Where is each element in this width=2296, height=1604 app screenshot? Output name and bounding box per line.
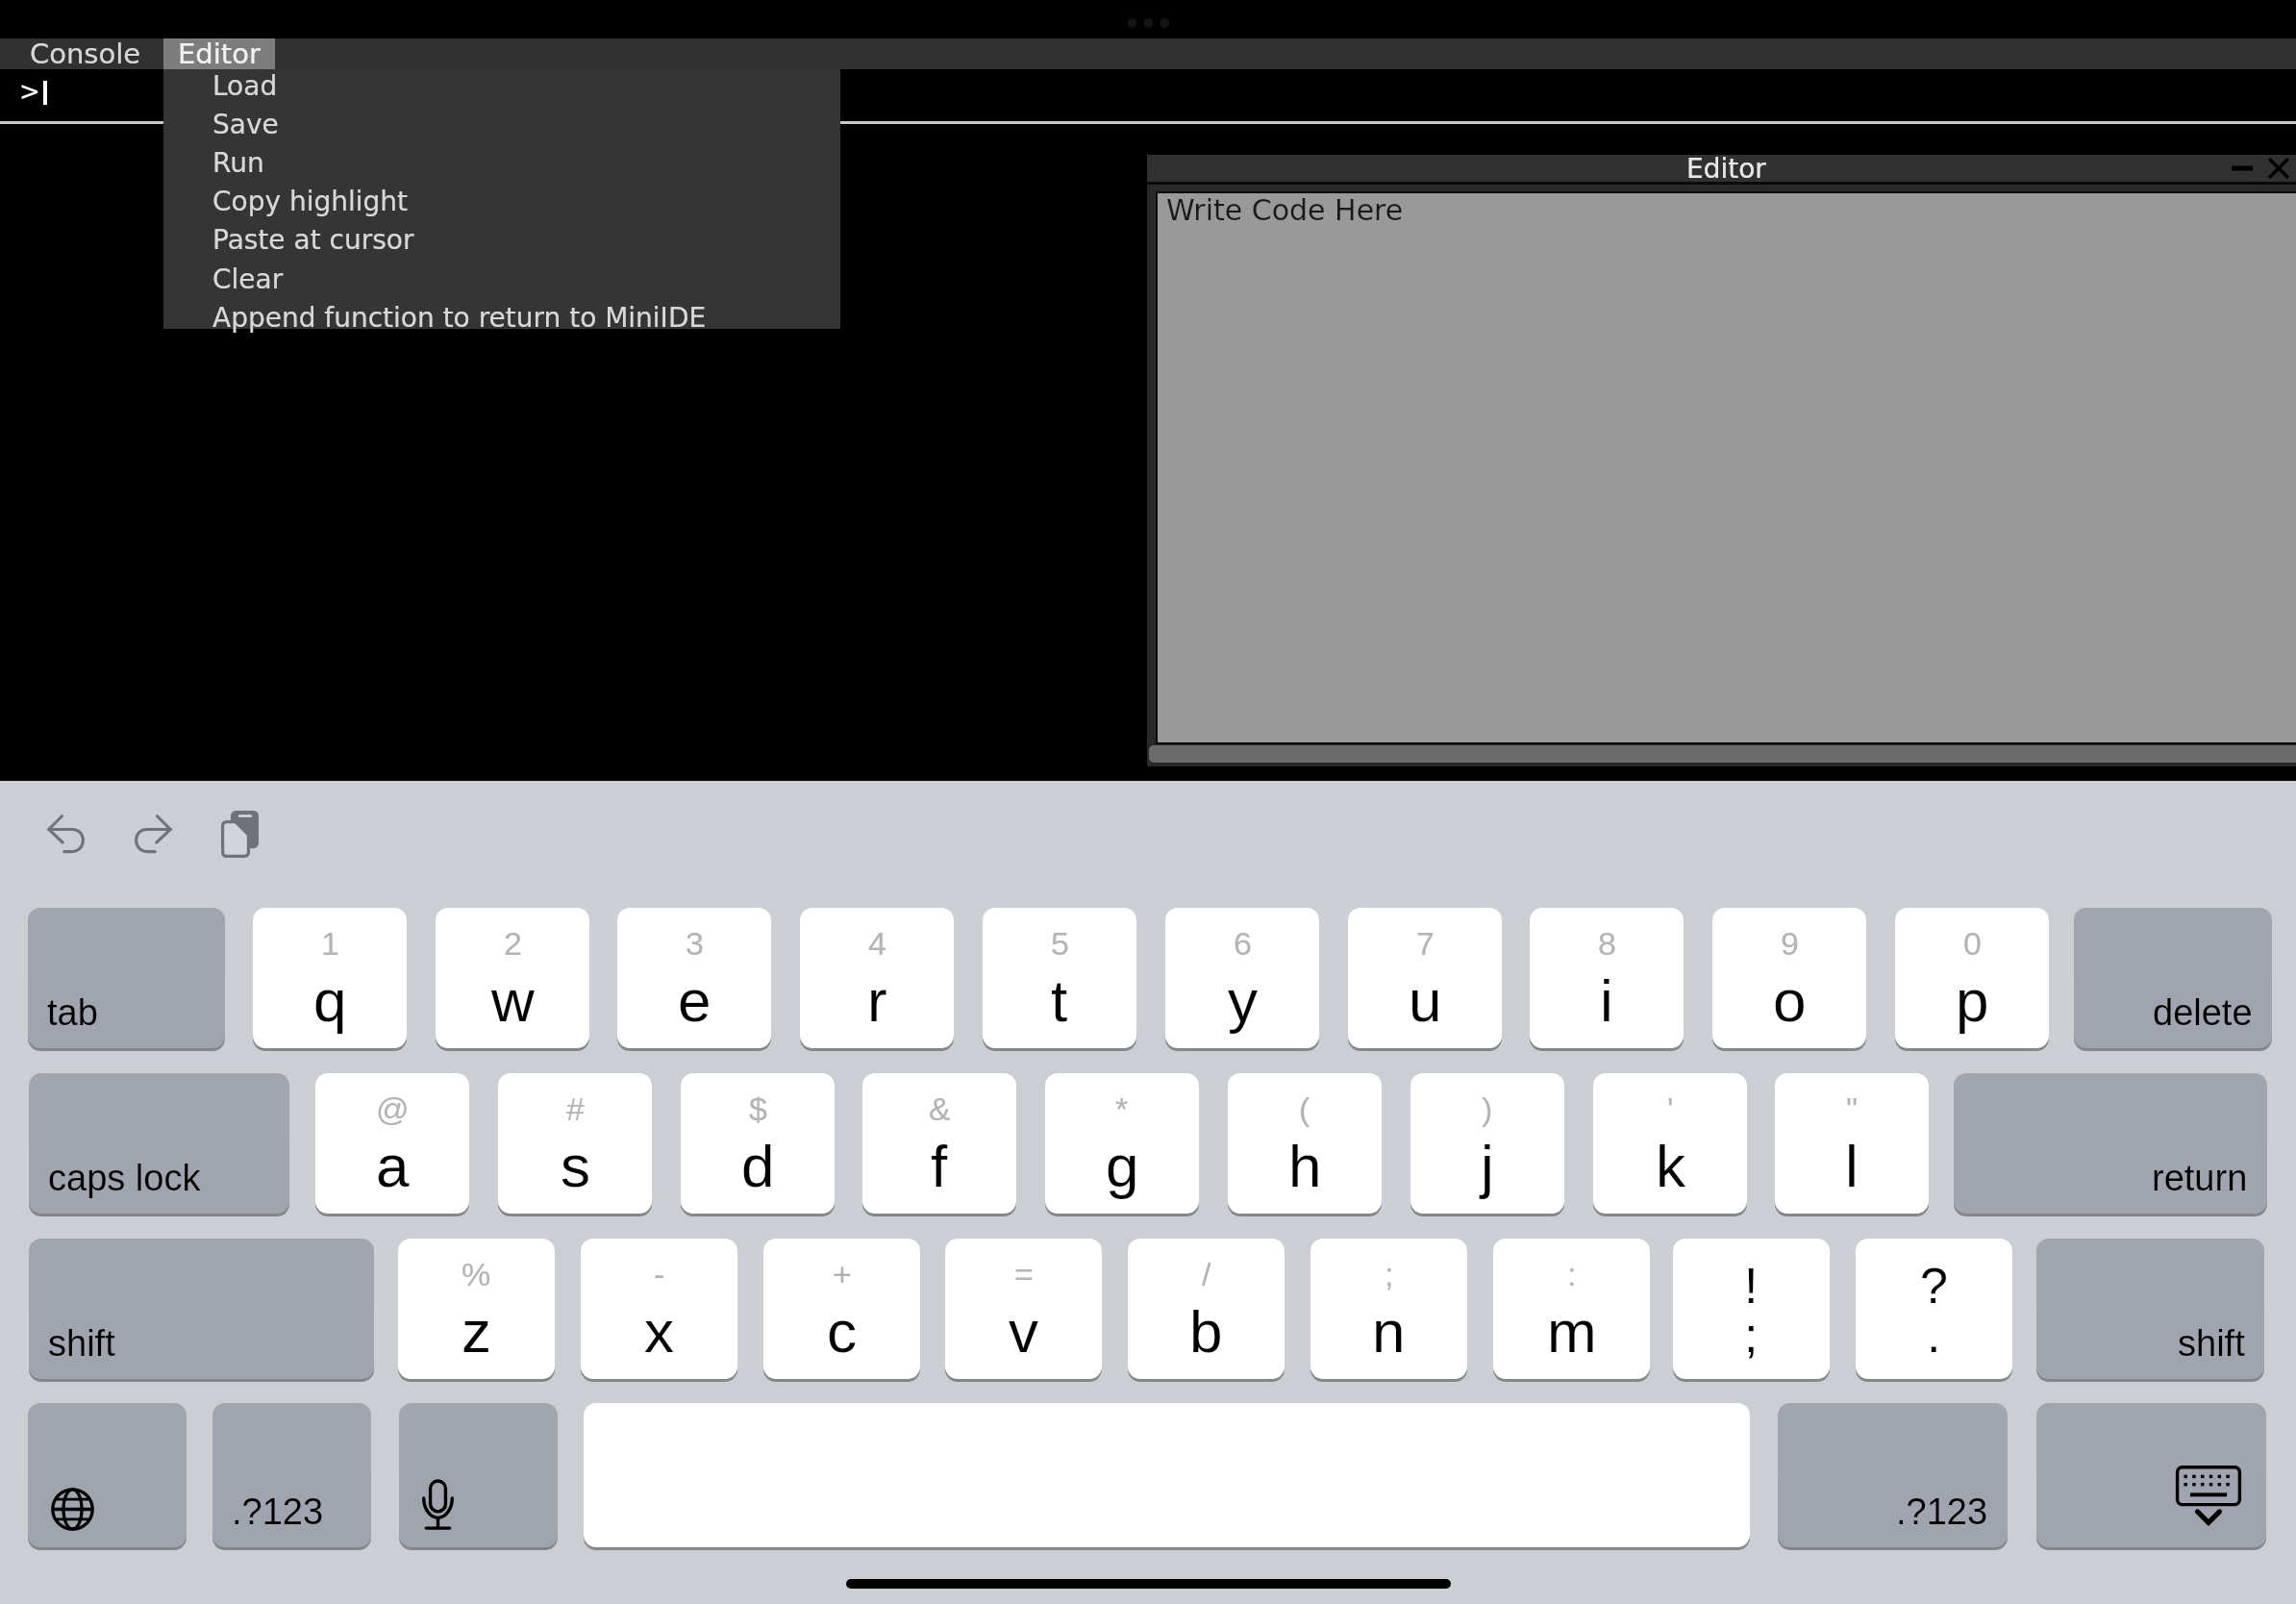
staticText: 0	[1963, 925, 1982, 962]
button[interactable]: :	[1493, 1239, 1650, 1379]
staticText: 2	[504, 925, 522, 962]
staticText: *	[1115, 1090, 1129, 1127]
button[interactable]: *	[1045, 1073, 1199, 1214]
button[interactable]: /	[1128, 1239, 1285, 1379]
button[interactable]: +	[763, 1239, 920, 1379]
staticText: Editor	[1686, 153, 1766, 180]
staticText: a	[376, 1133, 410, 1199]
staticText: =	[1014, 1256, 1034, 1292]
button[interactable]: Run	[163, 143, 840, 182]
staticText: delete	[2153, 992, 2253, 1033]
button[interactable]: 8	[1530, 908, 1684, 1048]
button[interactable]: return	[1954, 1073, 2267, 1214]
button[interactable]: caps lock	[29, 1073, 289, 1214]
button[interactable]: 6	[1165, 908, 1319, 1048]
button[interactable]: 4	[800, 908, 954, 1048]
button[interactable]: !	[1673, 1239, 1830, 1379]
staticText: 9	[1781, 925, 1799, 962]
staticText: p	[1956, 967, 1989, 1034]
button[interactable]: 3	[617, 908, 771, 1048]
staticText: 6	[1234, 925, 1252, 962]
button[interactable]: -	[581, 1239, 737, 1379]
staticText: w	[491, 967, 535, 1034]
staticText: 3	[686, 925, 704, 962]
button[interactable]: Undo	[37, 804, 96, 864]
button[interactable]: Append function to return to MiniIDE	[163, 298, 840, 337]
button[interactable]: Change keyboard	[28, 1403, 187, 1547]
staticText: 5	[1051, 925, 1069, 962]
staticText: Copy highlight	[212, 186, 409, 217]
staticText: 7	[1416, 925, 1435, 962]
staticText: Editor	[178, 38, 261, 68]
staticText: caps lock	[48, 1158, 201, 1198]
staticText: &	[929, 1090, 951, 1127]
button[interactable]: %	[398, 1239, 555, 1379]
button[interactable]: Close	[2259, 155, 2296, 182]
button[interactable]: ?	[1856, 1239, 2012, 1379]
button[interactable]: @	[315, 1073, 469, 1214]
button[interactable]: $	[681, 1073, 835, 1214]
button[interactable]: Dictation	[399, 1403, 558, 1547]
staticText: $	[749, 1090, 767, 1127]
staticText: f	[931, 1133, 948, 1199]
staticText: -	[654, 1256, 665, 1292]
button[interactable]: Redo	[123, 804, 183, 864]
staticText: /	[1202, 1256, 1211, 1292]
button[interactable]: 0	[1895, 908, 2049, 1048]
button[interactable]: #	[498, 1073, 652, 1214]
staticText: Run	[212, 147, 264, 179]
button[interactable]: Minimize	[2223, 155, 2261, 182]
staticText: Console	[30, 38, 141, 68]
button[interactable]: Copy highlight	[163, 182, 840, 220]
staticText: shift	[2178, 1323, 2245, 1364]
staticText: '	[1667, 1090, 1674, 1127]
button[interactable]: ;	[1310, 1239, 1467, 1379]
staticText: y	[1228, 967, 1258, 1034]
button[interactable]: Hide keyboard	[2036, 1403, 2266, 1547]
other: Dictation	[422, 1480, 454, 1531]
button[interactable]: )	[1410, 1073, 1564, 1214]
staticText: ;	[1385, 1256, 1394, 1292]
button[interactable]: Editor	[163, 38, 275, 69]
staticText: e	[678, 967, 711, 1034]
staticText: >	[19, 77, 40, 106]
staticText: Write Code Here	[1166, 193, 1404, 227]
staticText: x	[644, 1298, 674, 1365]
button[interactable]: shift	[29, 1239, 374, 1379]
staticText: u	[1409, 967, 1442, 1034]
staticText: q	[313, 967, 347, 1034]
staticText: k	[1656, 1133, 1685, 1199]
button[interactable]: 1	[253, 908, 407, 1048]
button[interactable]: Paste at cursor	[163, 220, 840, 259]
button[interactable]: Clear	[163, 260, 840, 298]
staticText: Paste at cursor	[212, 224, 414, 256]
staticText: tab	[47, 992, 98, 1033]
staticText: b	[1189, 1298, 1223, 1365]
button[interactable]	[584, 1403, 1750, 1547]
button[interactable]: =	[945, 1239, 1102, 1379]
button[interactable]: shift	[2036, 1239, 2264, 1379]
staticText: Load	[212, 70, 278, 102]
button[interactable]: tab	[28, 908, 225, 1048]
button[interactable]: Paste	[206, 804, 274, 865]
button[interactable]: '	[1593, 1073, 1747, 1214]
button[interactable]: 2	[436, 908, 589, 1048]
staticText: @	[376, 1090, 410, 1127]
button[interactable]: 7	[1348, 908, 1502, 1048]
button[interactable]: delete	[2074, 908, 2272, 1048]
staticText: ?	[1920, 1258, 1948, 1314]
button[interactable]: Load	[163, 66, 840, 105]
button[interactable]: (	[1228, 1073, 1382, 1214]
button[interactable]: .?123	[1778, 1403, 2008, 1547]
button[interactable]: Console	[0, 38, 163, 69]
button[interactable]: .?123	[212, 1403, 371, 1547]
staticText: z	[462, 1298, 491, 1365]
other: Change keyboard	[51, 1488, 94, 1531]
button[interactable]: 5	[983, 908, 1136, 1048]
staticText: return	[2152, 1158, 2248, 1198]
button[interactable]: Save	[163, 105, 840, 143]
button[interactable]: 9	[1712, 908, 1866, 1048]
button[interactable]: &	[862, 1073, 1016, 1214]
staticText: "	[1846, 1090, 1859, 1127]
button[interactable]: "	[1775, 1073, 1929, 1214]
